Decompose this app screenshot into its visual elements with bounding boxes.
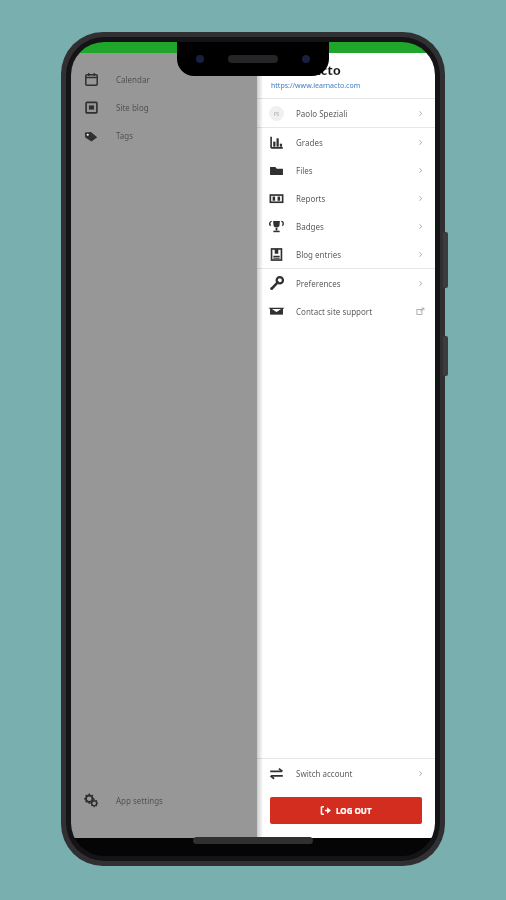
button[interactable]: Contact site support	[257, 297, 435, 325]
button[interactable]: Blog entries	[257, 240, 435, 268]
staticText: PS	[274, 111, 280, 117]
staticText: LOG OUT	[336, 805, 372, 816]
staticText: Preferences	[296, 278, 416, 289]
staticText: Switch account	[296, 768, 416, 779]
button[interactable]: Calendar	[71, 65, 257, 93]
button[interactable]: LOG OUT	[270, 797, 422, 824]
button[interactable]: Badges	[257, 212, 435, 240]
button[interactable]: Grades	[257, 128, 435, 156]
staticText: Reports	[296, 193, 416, 204]
other: Site blog	[84, 100, 99, 115]
button[interactable]: App settings	[71, 786, 257, 814]
staticText: Grades	[296, 137, 416, 148]
staticText: Learn Acto	[271, 61, 341, 79]
button[interactable]: Tags	[71, 121, 257, 149]
button[interactable]: Site blog	[71, 93, 257, 121]
staticText: Contact site support	[296, 306, 416, 317]
button[interactable]: Files	[257, 156, 435, 184]
staticText: App settings	[116, 795, 163, 806]
other: App settings	[84, 793, 99, 808]
button[interactable]: PS	[257, 99, 435, 127]
other: Tags	[84, 128, 99, 143]
button[interactable]: Switch account	[257, 759, 435, 787]
staticText: Badges	[296, 221, 416, 232]
staticText: Paolo Speziali	[296, 108, 416, 119]
staticText: Site blog	[116, 102, 149, 113]
button[interactable]: Reports	[257, 184, 435, 212]
other: Calendar	[84, 72, 99, 87]
staticText: Files	[296, 165, 416, 176]
button[interactable]: Preferences	[257, 269, 435, 297]
staticText: Calendar	[116, 74, 150, 85]
staticText: Blog entries	[296, 249, 416, 260]
staticText: Tags	[116, 130, 134, 141]
staticText: https://www.learnacto.com	[271, 81, 361, 91]
